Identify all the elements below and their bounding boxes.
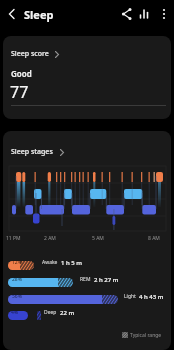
staticText: 2 AM — [44, 235, 56, 242]
button[interactable] — [156, 6, 172, 22]
staticText: 1 h 5 m — [61, 259, 82, 267]
button[interactable]: Sleep — [24, 7, 54, 22]
button[interactable] — [4, 6, 20, 22]
staticText: Sleep score — [11, 49, 49, 59]
staticText: 5 AM — [92, 235, 104, 242]
staticText: REM — [80, 276, 91, 283]
button[interactable]: Sleep stages — [3, 131, 171, 350]
staticText: Sleep — [24, 7, 54, 22]
staticText: Good — [11, 68, 32, 79]
button[interactable]: Sleep score — [3, 36, 171, 119]
staticText: Deep — [44, 309, 57, 316]
staticText: 28% — [12, 276, 22, 283]
staticText: Awake — [42, 259, 58, 266]
staticText: 8 AM — [148, 235, 160, 242]
staticText: 4% — [11, 309, 19, 316]
staticText: 2 h 27 m — [94, 276, 119, 284]
staticText: 77 — [10, 81, 29, 103]
staticText: Light — [124, 293, 136, 300]
staticText: 12% — [12, 259, 22, 266]
staticText: 56% — [12, 293, 22, 300]
staticText: 22 m — [60, 309, 75, 317]
button[interactable] — [136, 6, 152, 22]
staticText: 4 h 43 m — [139, 293, 164, 301]
button[interactable] — [118, 6, 134, 22]
staticText: 11 PM — [6, 235, 21, 242]
staticText: Typical range — [130, 332, 162, 339]
staticText: Sleep stages — [11, 147, 53, 157]
